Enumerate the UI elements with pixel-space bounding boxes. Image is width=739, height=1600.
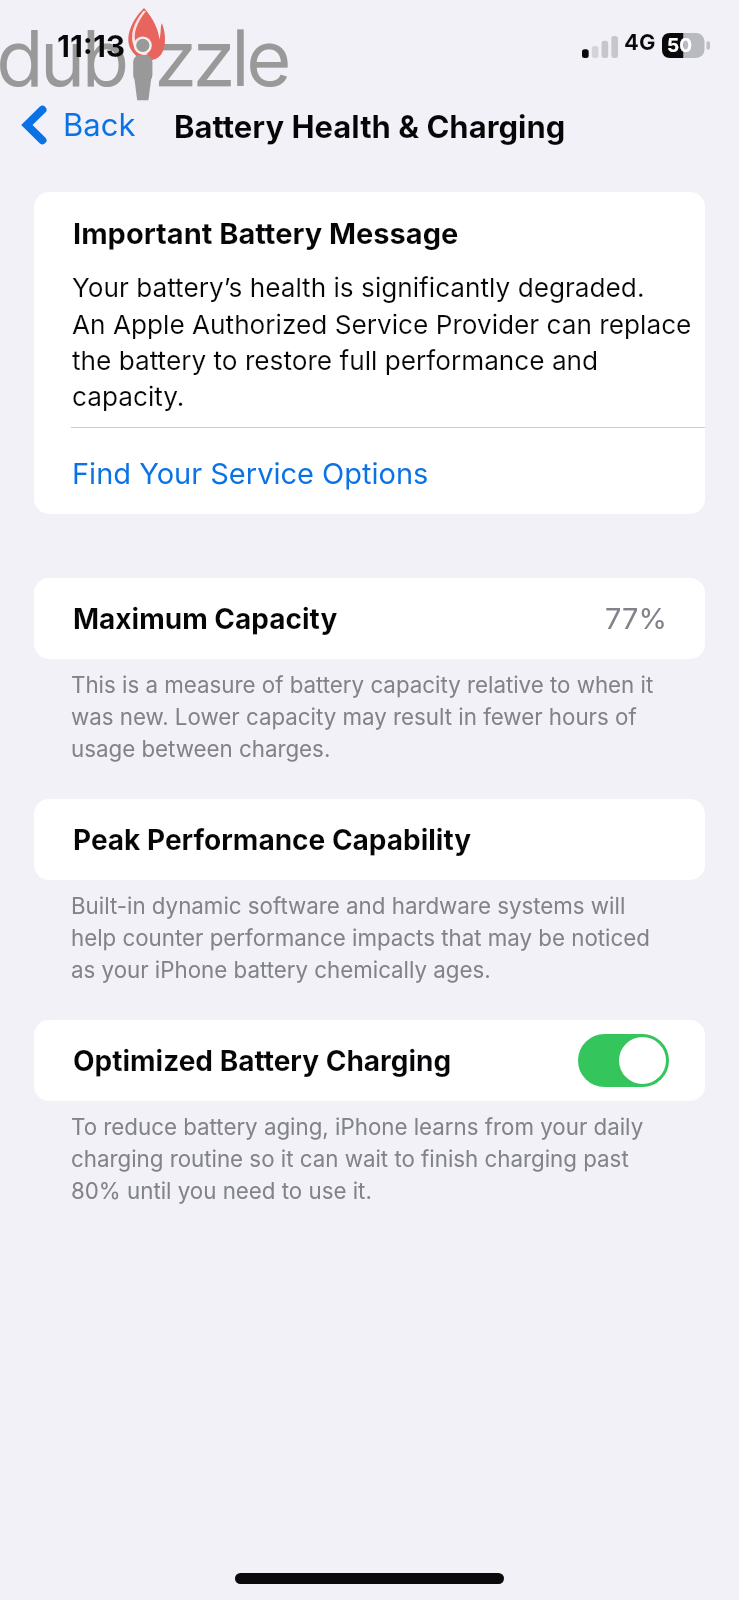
other: Back <box>25 108 44 142</box>
button[interactable]: Optimized Battery Charging <box>578 1034 669 1087</box>
staticText: Battery Health & Charging <box>174 108 566 146</box>
button[interactable]: Maximum Capacity <box>34 578 705 659</box>
button[interactable]: Peak Performance Capability <box>34 799 705 880</box>
staticText: Peak Performance Capability <box>73 823 472 857</box>
staticText: Optimized Battery Charging <box>73 1044 452 1078</box>
button[interactable]: Back <box>0 99 150 151</box>
staticText: 77% <box>605 601 667 636</box>
staticText: 4G <box>624 29 656 56</box>
staticText: Find Your Service Options <box>72 456 429 491</box>
staticText: dub <box>0 10 128 104</box>
staticText: Back <box>63 106 136 144</box>
staticText: zzle <box>156 10 290 104</box>
staticText: Your battery’s health is significantly d… <box>72 272 692 412</box>
button[interactable]: Find Your Service Options <box>34 428 705 514</box>
staticText: Important Battery Message <box>73 216 459 251</box>
staticText: Built-in dynamic software and hardware s… <box>71 892 650 983</box>
staticText: To reduce battery aging, iPhone learns f… <box>71 1113 644 1204</box>
staticText: This is a measure of battery capacity re… <box>71 671 654 762</box>
staticText: Maximum Capacity <box>73 602 338 636</box>
staticText: 50 <box>667 34 692 57</box>
staticText: 11:13 <box>57 28 126 64</box>
